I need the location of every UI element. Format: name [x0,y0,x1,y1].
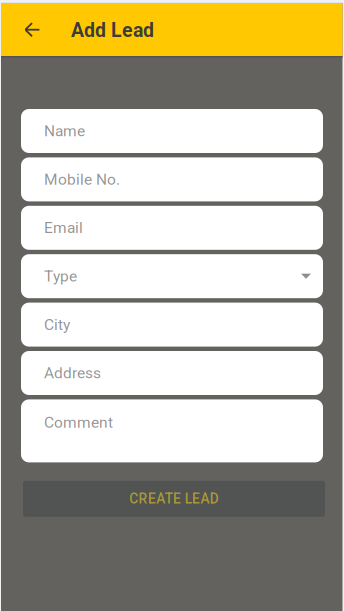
button[interactable]: Mobile No. [21,157,323,201]
staticText: Name [44,122,85,140]
button[interactable]: Name [21,109,323,153]
staticText: City [44,315,70,334]
staticText: CREATE LEAD [129,491,219,507]
button[interactable]: Email [21,206,323,250]
staticText: Comment [44,413,113,431]
staticText: Add Lead [71,19,154,42]
staticText: Mobile No. [44,170,120,188]
button[interactable]: City [21,303,323,347]
staticText: Address [44,364,101,382]
button[interactable]: CREATE LEAD [23,481,325,517]
staticText: Email [44,219,83,237]
button[interactable]: Comment [21,399,323,462]
button[interactable]: Back [1,3,39,56]
button[interactable]: Type [21,254,323,298]
button[interactable]: Address [21,351,323,395]
staticText: Type [44,267,77,285]
